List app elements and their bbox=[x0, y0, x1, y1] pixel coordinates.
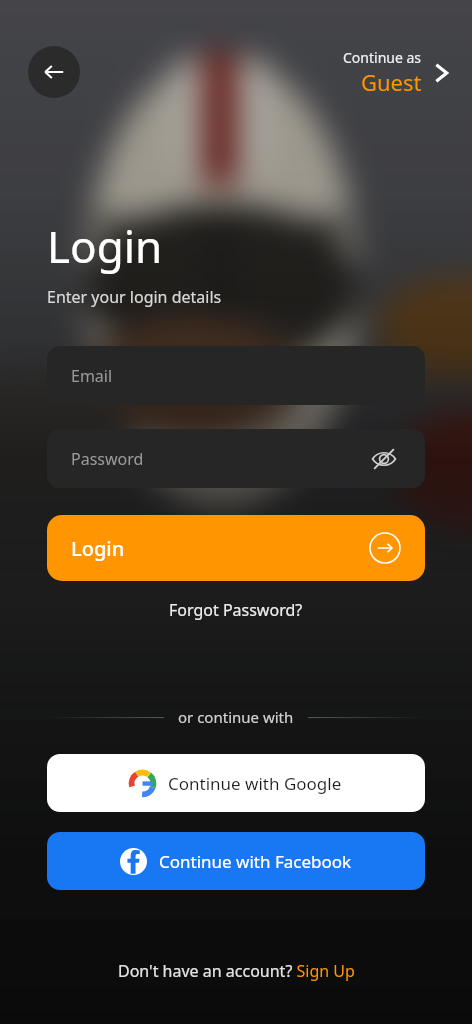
button[interactable]: Continue with Google bbox=[47, 754, 425, 812]
staticText: Continue with Facebook bbox=[159, 850, 352, 873]
button[interactable]: Show password bbox=[367, 442, 401, 476]
staticText: Email bbox=[71, 365, 113, 387]
staticText: Login bbox=[47, 216, 163, 276]
staticText: or continue with bbox=[178, 707, 294, 727]
button[interactable]: Email bbox=[47, 346, 425, 405]
staticText: Login bbox=[71, 535, 125, 562]
staticText: Don't have an account? Sign Up bbox=[118, 960, 355, 982]
staticText: Password bbox=[71, 448, 144, 470]
button[interactable]: Continue as bbox=[339, 44, 458, 101]
staticText: Continue as bbox=[343, 48, 422, 67]
button[interactable]: Back bbox=[28, 46, 80, 98]
staticText: Continue with Google bbox=[168, 772, 342, 795]
button[interactable]: Forgot Password? bbox=[159, 595, 313, 625]
button[interactable]: Don't have an account? Sign Up bbox=[110, 956, 363, 986]
staticText: Guest bbox=[361, 67, 422, 97]
button[interactable]: Continue with Facebook bbox=[47, 832, 425, 890]
button[interactable]: Login bbox=[47, 515, 425, 581]
staticText: Forgot Password? bbox=[169, 599, 303, 621]
staticText: Enter your login details bbox=[47, 286, 222, 308]
button[interactable]: Password bbox=[47, 429, 425, 488]
